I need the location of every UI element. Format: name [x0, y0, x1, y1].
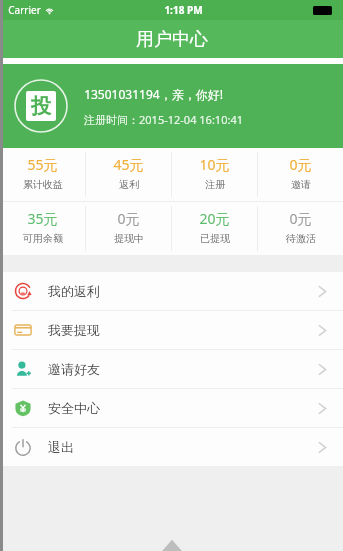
- staticText: 注册: [205, 178, 225, 191]
- staticText: 提现中: [114, 232, 144, 245]
- staticText: 我的返利: [48, 283, 100, 299]
- staticText: 用户中心: [136, 28, 208, 51]
- staticText: 0元: [289, 209, 312, 228]
- staticText: Carrier: [8, 3, 41, 17]
- staticText: 10元: [199, 155, 230, 174]
- button[interactable]: 0元: [86, 202, 171, 255]
- staticText: 我要提现: [48, 322, 100, 338]
- staticText: 1:18 PM: [164, 3, 203, 17]
- staticText: 安全中心: [48, 400, 100, 416]
- button[interactable]: 我要提现: [0, 311, 343, 349]
- staticText: 可用余额: [23, 232, 63, 245]
- staticText: 已提现: [200, 232, 230, 245]
- staticText: 20元: [199, 209, 230, 228]
- button[interactable]: 退出: [0, 428, 343, 466]
- button[interactable]: 20元: [172, 202, 257, 255]
- staticText: 邀请: [291, 178, 311, 191]
- button[interactable]: 55元: [0, 148, 85, 201]
- button[interactable]: 35元: [0, 202, 85, 255]
- staticText: 邀请好友: [48, 361, 100, 377]
- staticText: 45元: [113, 155, 144, 174]
- staticText: 35元: [27, 209, 58, 228]
- button[interactable]: 邀请好友: [0, 350, 343, 388]
- staticText: 退出: [48, 439, 74, 455]
- button[interactable]: 0元: [258, 202, 343, 255]
- staticText: 55元: [27, 155, 58, 174]
- button[interactable]: 0元: [258, 148, 343, 201]
- button[interactable]: 10元: [172, 148, 257, 201]
- button[interactable]: 45元: [86, 148, 171, 201]
- staticText: 注册时间：2015-12-04 16:10:41: [84, 112, 243, 127]
- button[interactable]: 我的返利: [0, 272, 343, 310]
- staticText: 返利: [119, 178, 139, 191]
- staticText: 13501031194，亲，你好!: [84, 86, 223, 102]
- staticText: 累计收益: [23, 178, 63, 191]
- staticText: 投: [31, 94, 51, 119]
- staticText: 0元: [117, 209, 140, 228]
- staticText: 待激活: [286, 232, 316, 245]
- button[interactable]: 安全中心: [0, 389, 343, 427]
- staticText: 0元: [289, 155, 312, 174]
